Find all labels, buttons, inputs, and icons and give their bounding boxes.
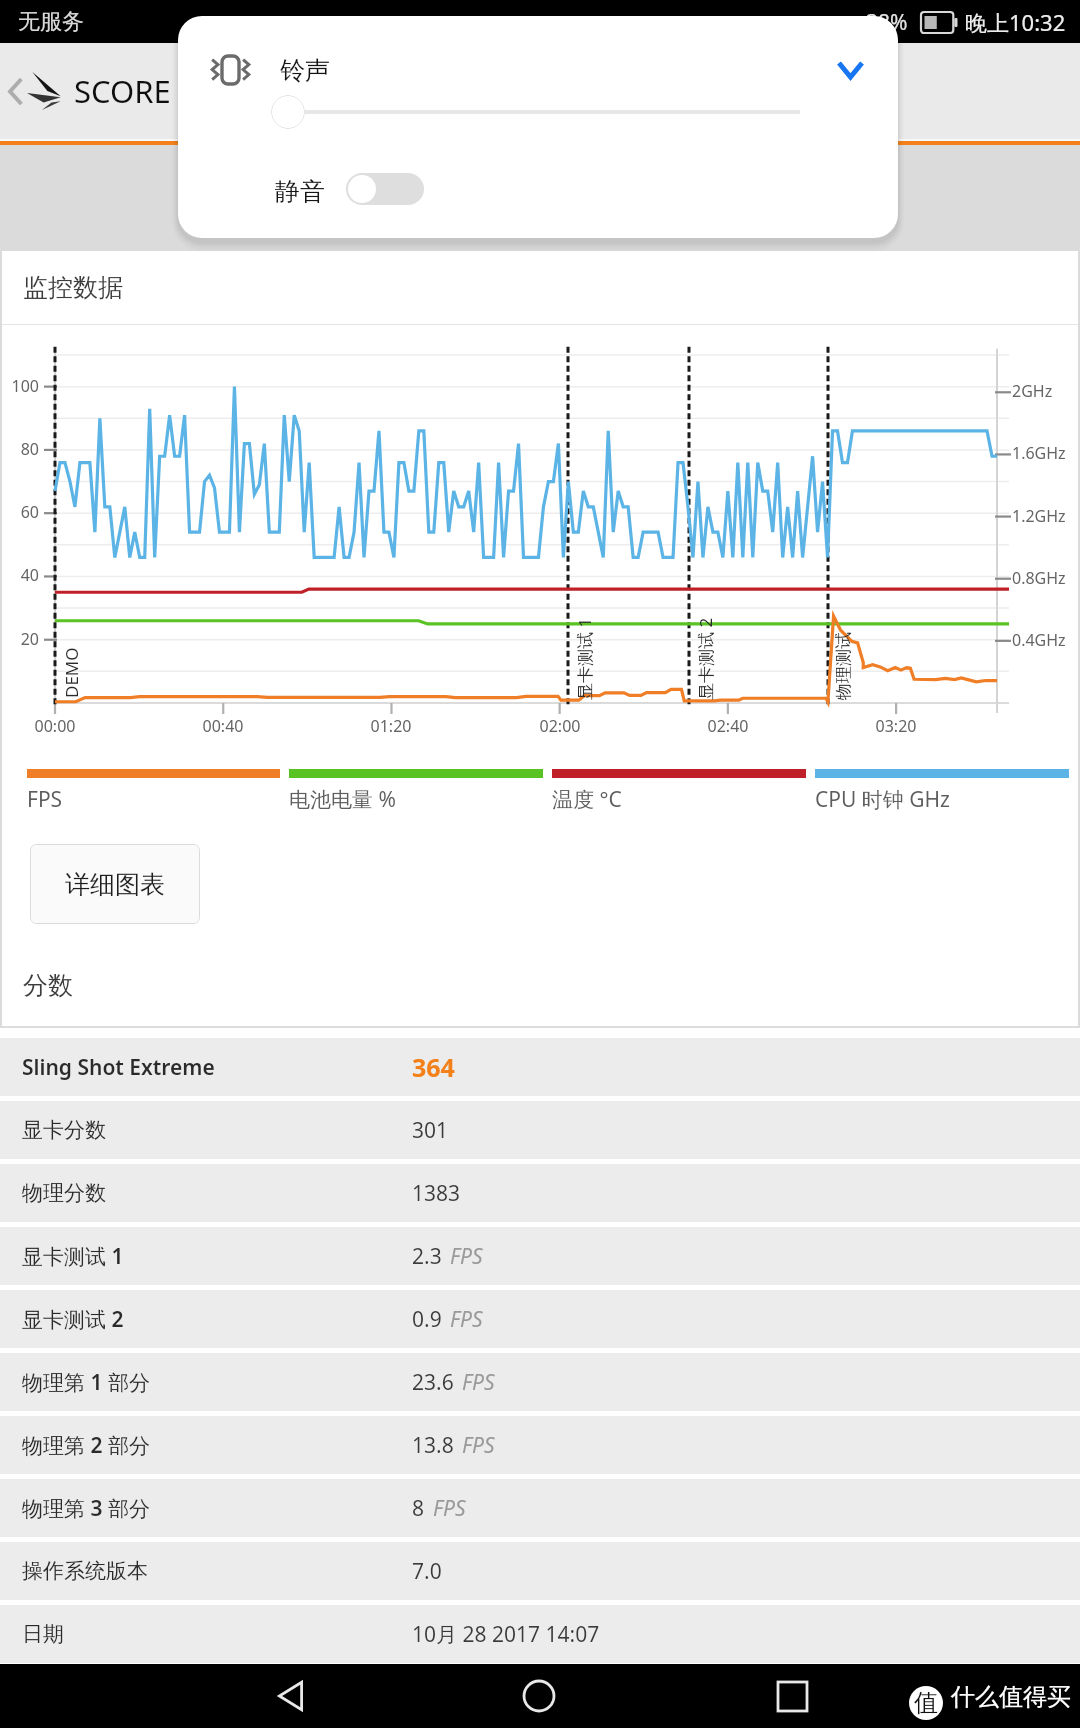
button[interactable]: 物理分数	[0, 1164, 1080, 1222]
staticText: 物理第 1 部分	[22, 1368, 412, 1397]
staticText: 显卡测试 2	[22, 1305, 412, 1334]
staticText: 13.8	[412, 1431, 454, 1460]
staticText: CPU 时钟 GHz	[815, 785, 950, 814]
button[interactable]: Volume slider	[271, 95, 305, 129]
staticText: 38%	[866, 8, 908, 37]
staticText: 80	[0, 438, 39, 460]
button[interactable]: 详细图表	[30, 844, 200, 924]
staticText: 值	[914, 1688, 938, 1718]
button[interactable]: 物理第 2 部分	[0, 1416, 1080, 1474]
staticText: 00:00	[10, 715, 100, 737]
staticText: 晚上10:32	[965, 7, 1066, 37]
button[interactable]: Back	[258, 1664, 326, 1728]
staticText: 10月 28 2017 14:07	[412, 1620, 600, 1649]
staticText: 显卡测试 1	[22, 1242, 412, 1271]
staticText: Sling Shot Extreme	[22, 1053, 412, 1082]
staticText: 1.2GHz	[1012, 505, 1066, 527]
button[interactable]: Back	[0, 65, 30, 117]
staticText: 8	[412, 1494, 425, 1523]
staticText: FPS	[433, 1494, 466, 1523]
button[interactable]: 显卡测试 1	[0, 1227, 1080, 1285]
staticText: 铃声	[280, 55, 330, 86]
button[interactable]: 显卡测试 2	[0, 1290, 1080, 1348]
staticText: 无服务	[18, 8, 84, 36]
button[interactable]: 日期	[0, 1605, 1080, 1663]
staticText: 23.6	[412, 1368, 454, 1397]
staticText: 03:20	[851, 715, 941, 737]
staticText: FPS	[450, 1242, 483, 1271]
staticText: FPS	[462, 1431, 495, 1460]
staticText: 1383	[412, 1179, 461, 1208]
staticText: 02:40	[683, 715, 773, 737]
staticText: 监控数据	[23, 272, 123, 303]
staticText: 2.3	[412, 1242, 442, 1271]
staticText: 操作系统版本	[22, 1558, 412, 1584]
staticText: 物理第 3 部分	[22, 1494, 412, 1523]
staticText: 301	[412, 1116, 449, 1145]
staticText: 分数	[23, 970, 73, 1001]
button[interactable]: Mute toggle	[346, 173, 424, 205]
staticText: 40	[0, 564, 39, 586]
staticText: 60	[0, 501, 39, 523]
staticText: 7.0	[412, 1557, 442, 1586]
staticText: 20	[0, 628, 39, 650]
staticText: 日期	[22, 1621, 412, 1647]
staticText: 0.9	[412, 1305, 442, 1334]
button[interactable]: Recents	[758, 1664, 826, 1728]
staticText: 02:00	[515, 715, 605, 737]
staticText: 00:40	[178, 715, 268, 737]
button[interactable]: 操作系统版本	[0, 1542, 1080, 1600]
staticText: FPS	[27, 785, 63, 814]
staticText: 电池电量 %	[289, 785, 396, 814]
staticText: 364	[412, 1050, 455, 1084]
staticText: 详细图表	[65, 869, 165, 900]
button[interactable]: Home	[505, 1664, 573, 1728]
staticText: 1.6GHz	[1012, 442, 1066, 464]
staticText: SCORE	[74, 70, 171, 112]
button[interactable]: Sling Shot Extreme	[0, 1038, 1080, 1096]
staticText: 2GHz	[1012, 380, 1053, 402]
button[interactable]: 物理第 1 部分	[0, 1353, 1080, 1411]
staticText: 物理第 2 部分	[22, 1431, 412, 1460]
button[interactable]: 显卡分数	[0, 1101, 1080, 1159]
staticText: 静音	[275, 176, 325, 207]
staticText: FPS	[450, 1305, 483, 1334]
staticText: 100	[0, 375, 39, 397]
staticText: 显卡分数	[22, 1117, 412, 1143]
button[interactable]: Expand volume panel	[818, 42, 882, 98]
button[interactable]: 物理第 3 部分	[0, 1479, 1080, 1537]
staticText: 0.4GHz	[1012, 629, 1066, 651]
button[interactable]: 铃声	[200, 42, 400, 98]
staticText: 01:20	[346, 715, 436, 737]
staticText: FPS	[462, 1368, 495, 1397]
staticText: 0.8GHz	[1012, 567, 1066, 589]
staticText: 物理分数	[22, 1180, 412, 1206]
staticText: 温度 °C	[552, 785, 622, 814]
staticText: 什么值得买	[951, 1682, 1071, 1712]
